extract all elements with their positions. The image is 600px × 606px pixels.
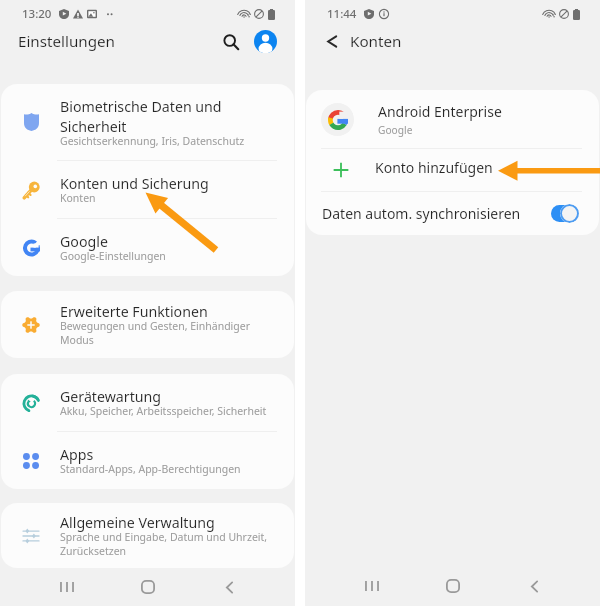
button[interactable]: Konten und Sicherung <box>1 161 294 218</box>
button[interactable]: Biometrische Daten und Sicherheit <box>1 84 294 160</box>
button[interactable]: Letzte Apps <box>354 568 390 604</box>
staticText: Android Enterprise <box>378 102 502 121</box>
staticText: Allgemeine Verwaltung <box>60 513 215 532</box>
button[interactable]: Letzte Apps <box>49 569 85 605</box>
button[interactable]: Startseite <box>130 569 166 605</box>
staticText: 11:44 <box>327 6 357 22</box>
staticText: Gesichtserkennung, Iris, Datenschutz <box>60 134 245 148</box>
staticText: Daten autom. synchronisieren <box>322 204 521 223</box>
button[interactable]: Daten autom. synchronisieren <box>306 192 599 235</box>
staticText: 13:20 <box>22 6 52 22</box>
staticText: Google <box>378 123 413 137</box>
staticText: Akku, Speicher, Arbeitsspeicher, Sicherh… <box>60 404 267 418</box>
button[interactable]: Zurück <box>516 568 552 604</box>
staticText: Erweiterte Funktionen <box>60 302 208 321</box>
staticText: Apps <box>60 445 94 464</box>
staticText: Gerätewartung <box>60 387 162 406</box>
button[interactable]: Zurück <box>320 29 344 53</box>
staticText: Biometrische Daten und Sicherheit <box>60 97 272 136</box>
button[interactable]: Google <box>1 219 294 276</box>
button[interactable]: Suchen <box>221 29 245 53</box>
staticText: Bewegungen und Gesten, Einhändiger Modus <box>60 319 272 347</box>
button[interactable]: Erweiterte Funktionen <box>1 291 294 358</box>
staticText: Einstellungen <box>18 31 115 52</box>
button[interactable]: Daten autom. synchronisieren umschalten <box>548 204 579 223</box>
staticText: Konten <box>60 191 96 205</box>
button[interactable]: Konto hinzufügen <box>306 149 599 191</box>
button[interactable]: Apps <box>1 432 294 489</box>
button[interactable]: Konto <box>254 30 277 53</box>
button[interactable]: Startseite <box>435 568 471 604</box>
staticText: Sprache und Eingabe, Datum und Uhrzeit, … <box>60 530 272 558</box>
staticText: Google <box>60 232 108 251</box>
button[interactable]: Zurück <box>211 569 247 605</box>
button[interactable]: Gerätewartung <box>1 374 294 431</box>
staticText: Konten <box>350 31 402 52</box>
staticText: Konto hinzufügen <box>375 158 493 177</box>
staticText: Standard-Apps, App-Berechtigungen <box>60 462 241 476</box>
button[interactable]: Allgemeine Verwaltung <box>1 503 294 568</box>
button[interactable]: Android Enterprise <box>306 90 599 148</box>
staticText: Konten und Sicherung <box>60 174 209 193</box>
staticText: Google-Einstellungen <box>60 249 166 263</box>
